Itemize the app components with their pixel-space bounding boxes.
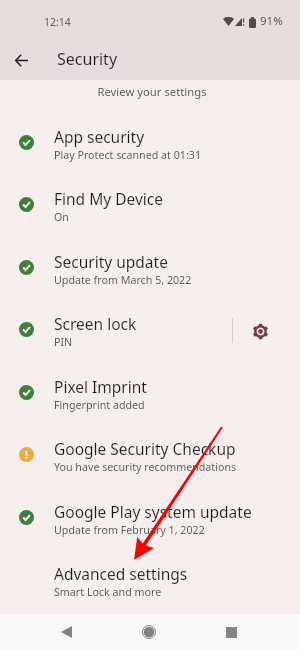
- staticText: Advanced settings: [54, 563, 188, 584]
- staticText: Smart Lock and more: [54, 585, 162, 600]
- staticText: PIN: [54, 335, 73, 350]
- staticText: Update from February 1, 2022: [54, 523, 205, 538]
- staticText: Review your settings: [2, 84, 300, 99]
- button[interactable]: Advanced settings: [0, 549, 300, 611]
- staticText: You have security recommendations: [54, 460, 237, 475]
- staticText: Security update: [54, 251, 168, 272]
- staticText: Update from March 5, 2022: [54, 273, 192, 288]
- staticText: Find My Device: [54, 188, 163, 209]
- staticText: 12:14: [44, 15, 71, 29]
- staticText: Screen lock: [54, 313, 137, 334]
- button[interactable]: Recent apps: [190, 614, 272, 650]
- button[interactable]: App security: [0, 112, 300, 174]
- button[interactable]: Find My Device: [0, 174, 300, 236]
- button[interactable]: Back: [25, 614, 108, 650]
- button[interactable]: Screen lock: [0, 299, 300, 361]
- button[interactable]: Security update: [0, 237, 300, 299]
- staticText: Fingerprint added: [54, 398, 145, 413]
- staticText: 91%: [260, 13, 283, 29]
- button[interactable]: Google Security Checkup: [0, 424, 300, 486]
- staticText: Google Play system update: [54, 501, 252, 522]
- staticText: Pixel Imprint: [54, 376, 147, 397]
- button[interactable]: Home: [108, 614, 190, 650]
- button[interactable]: Navigate up: [0, 40, 44, 80]
- button[interactable]: Pixel Imprint: [0, 362, 300, 424]
- staticText: App security: [54, 126, 145, 147]
- staticText: Play Protect scanned at 01:31: [54, 148, 202, 163]
- staticText: Security: [57, 48, 118, 70]
- staticText: Google Security Checkup: [54, 438, 236, 459]
- button[interactable]: Google Play system update: [0, 487, 300, 549]
- staticText: On: [54, 210, 69, 225]
- button[interactable]: Screen lock settings: [237, 306, 295, 354]
